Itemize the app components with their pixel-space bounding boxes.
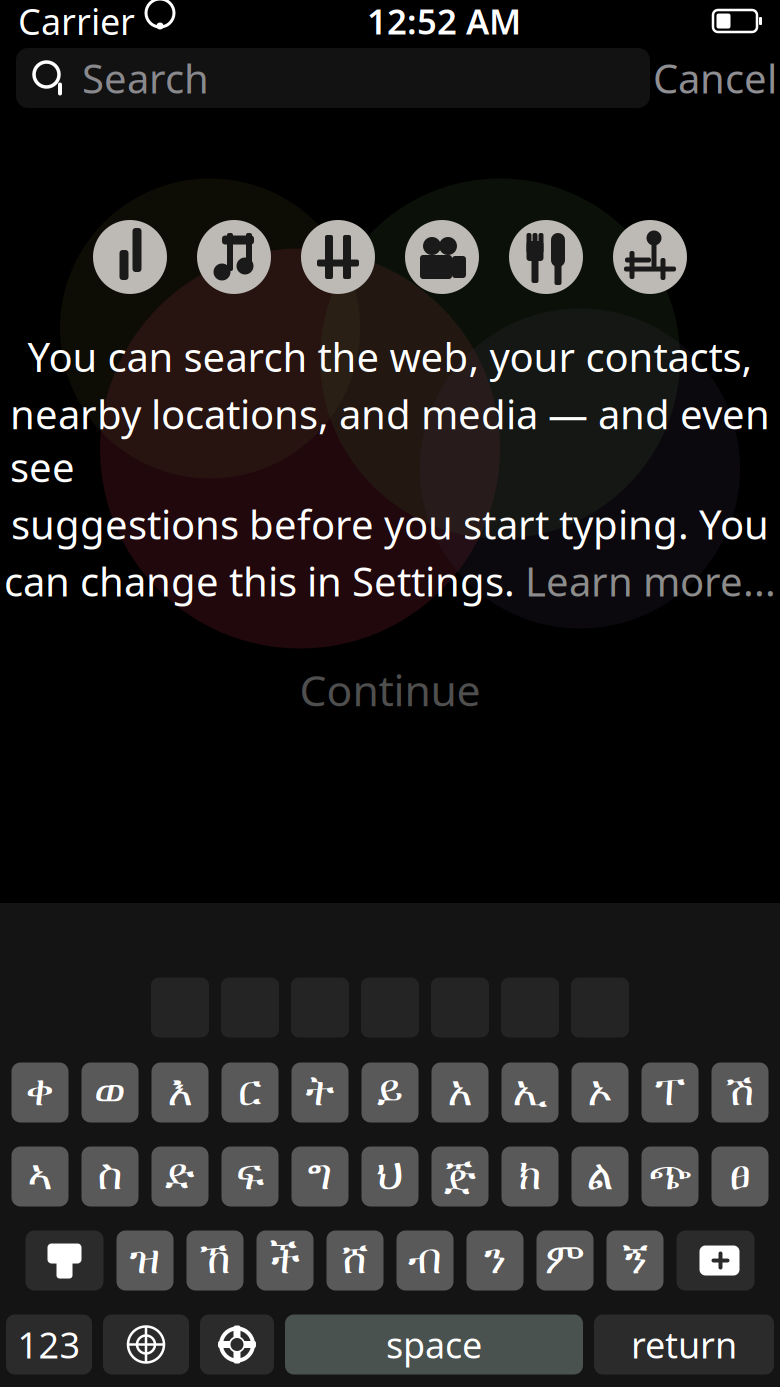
button[interactable]: Music [197, 220, 271, 294]
button[interactable]: ት [291, 1062, 348, 1122]
staticText: ኣ [27, 1156, 52, 1197]
button[interactable]: ች [256, 1230, 313, 1290]
staticText: ህ [376, 1156, 403, 1197]
staticText: ድ [165, 1156, 195, 1197]
staticText: ቀ [25, 1072, 54, 1113]
staticText: ኸ [199, 1240, 231, 1281]
staticText: ኦ [587, 1072, 612, 1113]
button[interactable]: ፍ [221, 1146, 278, 1206]
button[interactable]: Shift [25, 1230, 103, 1290]
button[interactable]: Restaurants [509, 220, 583, 294]
button[interactable]: ር [221, 1062, 278, 1122]
staticText: ክ [518, 1156, 541, 1197]
button[interactable]: ም [536, 1230, 593, 1290]
button[interactable]: እ [151, 1062, 208, 1122]
button[interactable]: ግ [291, 1146, 348, 1206]
staticText: ፀ [729, 1156, 750, 1197]
button[interactable]: Next keyboard [103, 1314, 189, 1374]
staticText: suggestions before you start typing. You [11, 497, 769, 550]
staticText: ጅ [444, 1156, 476, 1197]
staticText: ጭ [648, 1156, 691, 1197]
staticText: 12:52 AM [367, 0, 521, 44]
staticText: ር [238, 1072, 262, 1113]
button[interactable]: Continue [240, 660, 540, 720]
staticText: ይ [377, 1072, 403, 1113]
button[interactable]: ኣ [11, 1146, 68, 1206]
button[interactable]: ኦ [571, 1062, 628, 1122]
button[interactable]: ክ [501, 1146, 558, 1206]
staticText: You can search the web, your contacts, [27, 330, 752, 383]
staticText: Continue [299, 661, 480, 718]
button[interactable]: ዝ [116, 1230, 173, 1290]
staticText: ግ [307, 1156, 332, 1197]
staticText: ወ [94, 1072, 126, 1113]
button[interactable]: ቀ [11, 1062, 68, 1122]
button[interactable]: ኢ [501, 1062, 558, 1122]
button[interactable]: ል [571, 1146, 628, 1206]
staticText: ም [545, 1240, 585, 1281]
button[interactable]: Video [405, 220, 479, 294]
button[interactable]: ስ [81, 1146, 138, 1206]
staticText: ን [484, 1240, 506, 1281]
button[interactable]: Settings [200, 1314, 274, 1374]
staticText: ሸ [341, 1240, 368, 1281]
button[interactable]: 123 [6, 1314, 92, 1374]
staticText: Search [82, 51, 209, 104]
staticText: ብ [408, 1240, 442, 1281]
button[interactable]: Maps [613, 220, 687, 294]
button[interactable]: Search [16, 48, 650, 108]
staticText: ኢ [512, 1072, 547, 1113]
button[interactable]: ፀ [711, 1146, 768, 1206]
button[interactable]: ሸ [326, 1230, 383, 1290]
button[interactable]: App Store [301, 220, 375, 294]
button[interactable]: ጭ [641, 1146, 698, 1206]
button[interactable]: ፐ [641, 1062, 698, 1122]
button[interactable]: Delete [676, 1230, 754, 1290]
staticText: space [386, 1321, 482, 1368]
button[interactable]: ሽ [711, 1062, 768, 1122]
button[interactable]: ወ [81, 1062, 138, 1122]
button[interactable]: ኸ [186, 1230, 243, 1290]
button[interactable]: ይ [361, 1062, 418, 1122]
staticText: አ [447, 1072, 472, 1113]
staticText: ት [305, 1072, 334, 1113]
staticText: ኝ [622, 1240, 647, 1281]
button[interactable]: space [285, 1314, 583, 1374]
button[interactable]: አ [431, 1062, 488, 1122]
button[interactable]: ድ [151, 1146, 208, 1206]
staticText: Cancel [653, 51, 777, 104]
button[interactable]: Learn more... [515, 554, 776, 608]
staticText: nearby locations, and media — and even s… [10, 387, 770, 493]
staticText: ል [586, 1156, 613, 1197]
button[interactable]: Safari [93, 220, 167, 294]
button[interactable]: Cancel [650, 48, 780, 108]
button[interactable]: ን [466, 1230, 523, 1290]
staticText: ች [270, 1240, 300, 1281]
button[interactable]: ህ [361, 1146, 418, 1206]
staticText: እ [167, 1072, 192, 1113]
staticText: ፐ [655, 1072, 685, 1113]
button[interactable]: return [594, 1314, 774, 1374]
button[interactable]: ጅ [431, 1146, 488, 1206]
staticText: Learn more... [515, 554, 776, 608]
staticText: ስ [97, 1156, 122, 1197]
staticText: ፍ [236, 1156, 264, 1197]
staticText: Carrier [18, 0, 135, 45]
staticText: can change this in Settings. [4, 554, 515, 608]
staticText: return [631, 1321, 737, 1368]
staticText: ሽ [725, 1072, 754, 1113]
staticText: ዝ [129, 1240, 160, 1281]
button[interactable]: ኝ [606, 1230, 663, 1290]
button[interactable]: ብ [396, 1230, 453, 1290]
staticText: 123 [17, 1321, 80, 1368]
